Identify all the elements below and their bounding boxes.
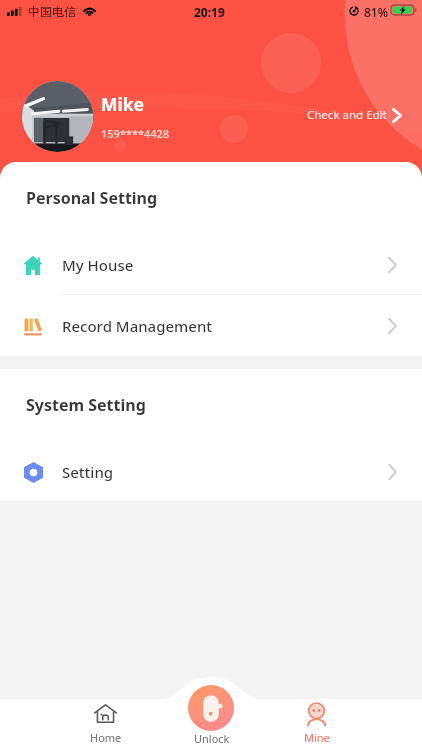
button[interactable]: Record Management: [0, 295, 422, 356]
staticText: Record Management: [62, 316, 213, 336]
staticText: 81%: [364, 4, 388, 20]
staticText: Unlock: [194, 731, 230, 746]
staticText: My House: [62, 255, 134, 275]
staticText: 20:19: [194, 4, 225, 20]
staticText: 159****4428: [101, 126, 170, 141]
staticText: Mine: [304, 730, 330, 745]
button[interactable]: My House: [0, 234, 422, 295]
staticText: Mike: [101, 92, 145, 116]
staticText: Setting: [62, 462, 114, 482]
staticText: Check and Edit: [307, 107, 387, 123]
button[interactable]: Setting: [0, 441, 422, 502]
staticText: Personal Setting: [26, 187, 158, 209]
button[interactable]: Mine: [281, 699, 352, 750]
staticText: System Setting: [26, 394, 146, 416]
button[interactable]: Profile photo: [22, 81, 93, 152]
staticText: Home: [90, 730, 122, 745]
button[interactable]: Home: [70, 699, 141, 750]
button[interactable]: Unlock: [176, 699, 247, 750]
staticText: 中国电信: [28, 4, 76, 19]
button[interactable]: Check and Edit: [305, 103, 416, 127]
button[interactable]: Unlock: [188, 685, 234, 731]
